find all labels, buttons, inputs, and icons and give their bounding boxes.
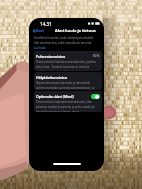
staticText: siksi, ilmaa - Toiminto tunnistaa on sii…: [36, 65, 90, 69]
button[interactable]: Optimoitu ääni toggle: [91, 94, 100, 99]
staticText: 60 %: [93, 54, 100, 58]
button[interactable]: Puheentunnistus: [34, 51, 102, 71]
staticText: Lue lisää: [34, 46, 46, 50]
button[interactable]: Hälyäänitunnistus: [34, 72, 102, 90]
staticText: Tämä toiminto lisää äänenvoimakkuutta, t…: [36, 100, 92, 104]
staticText: tilat toimivat sinä, sekä voimakkuut tar…: [34, 41, 92, 45]
staticText: Optimoitu ääni (Mind): [36, 94, 74, 99]
staticText: Sovelluksen avulla, kuulo-laitteet ja ku…: [34, 36, 94, 40]
staticText: Hälyäänitunnistus: [36, 75, 68, 80]
staticText: toiset tilaa tarvetta ja ilmaisu tasoja: [36, 110, 80, 112]
staticText: Tämä toiminto lisää äänenvoimakkuutta, p…: [36, 60, 96, 64]
staticText: 14.31: [40, 21, 52, 27]
button[interactable]: Optimoitu ääni (Mind): [34, 91, 102, 112]
button[interactable]: Ääni: [33, 28, 45, 33]
staticText: Nopeat äänentasot väpsintää, ja tehostus…: [36, 81, 90, 85]
staticText: Puheentunnistus: [36, 54, 66, 59]
staticText: Ääni: [36, 28, 45, 33]
staticText: parantaa mukaan ja parempi ja puhuu saad…: [36, 105, 95, 109]
staticText: naurihärmyt tarvetta taikka: [36, 70, 70, 71]
staticText: puhetta tunnistaa suunnista automaattise…: [36, 86, 95, 90]
staticText: Akut kuulo ja tietous: [55, 28, 96, 33]
